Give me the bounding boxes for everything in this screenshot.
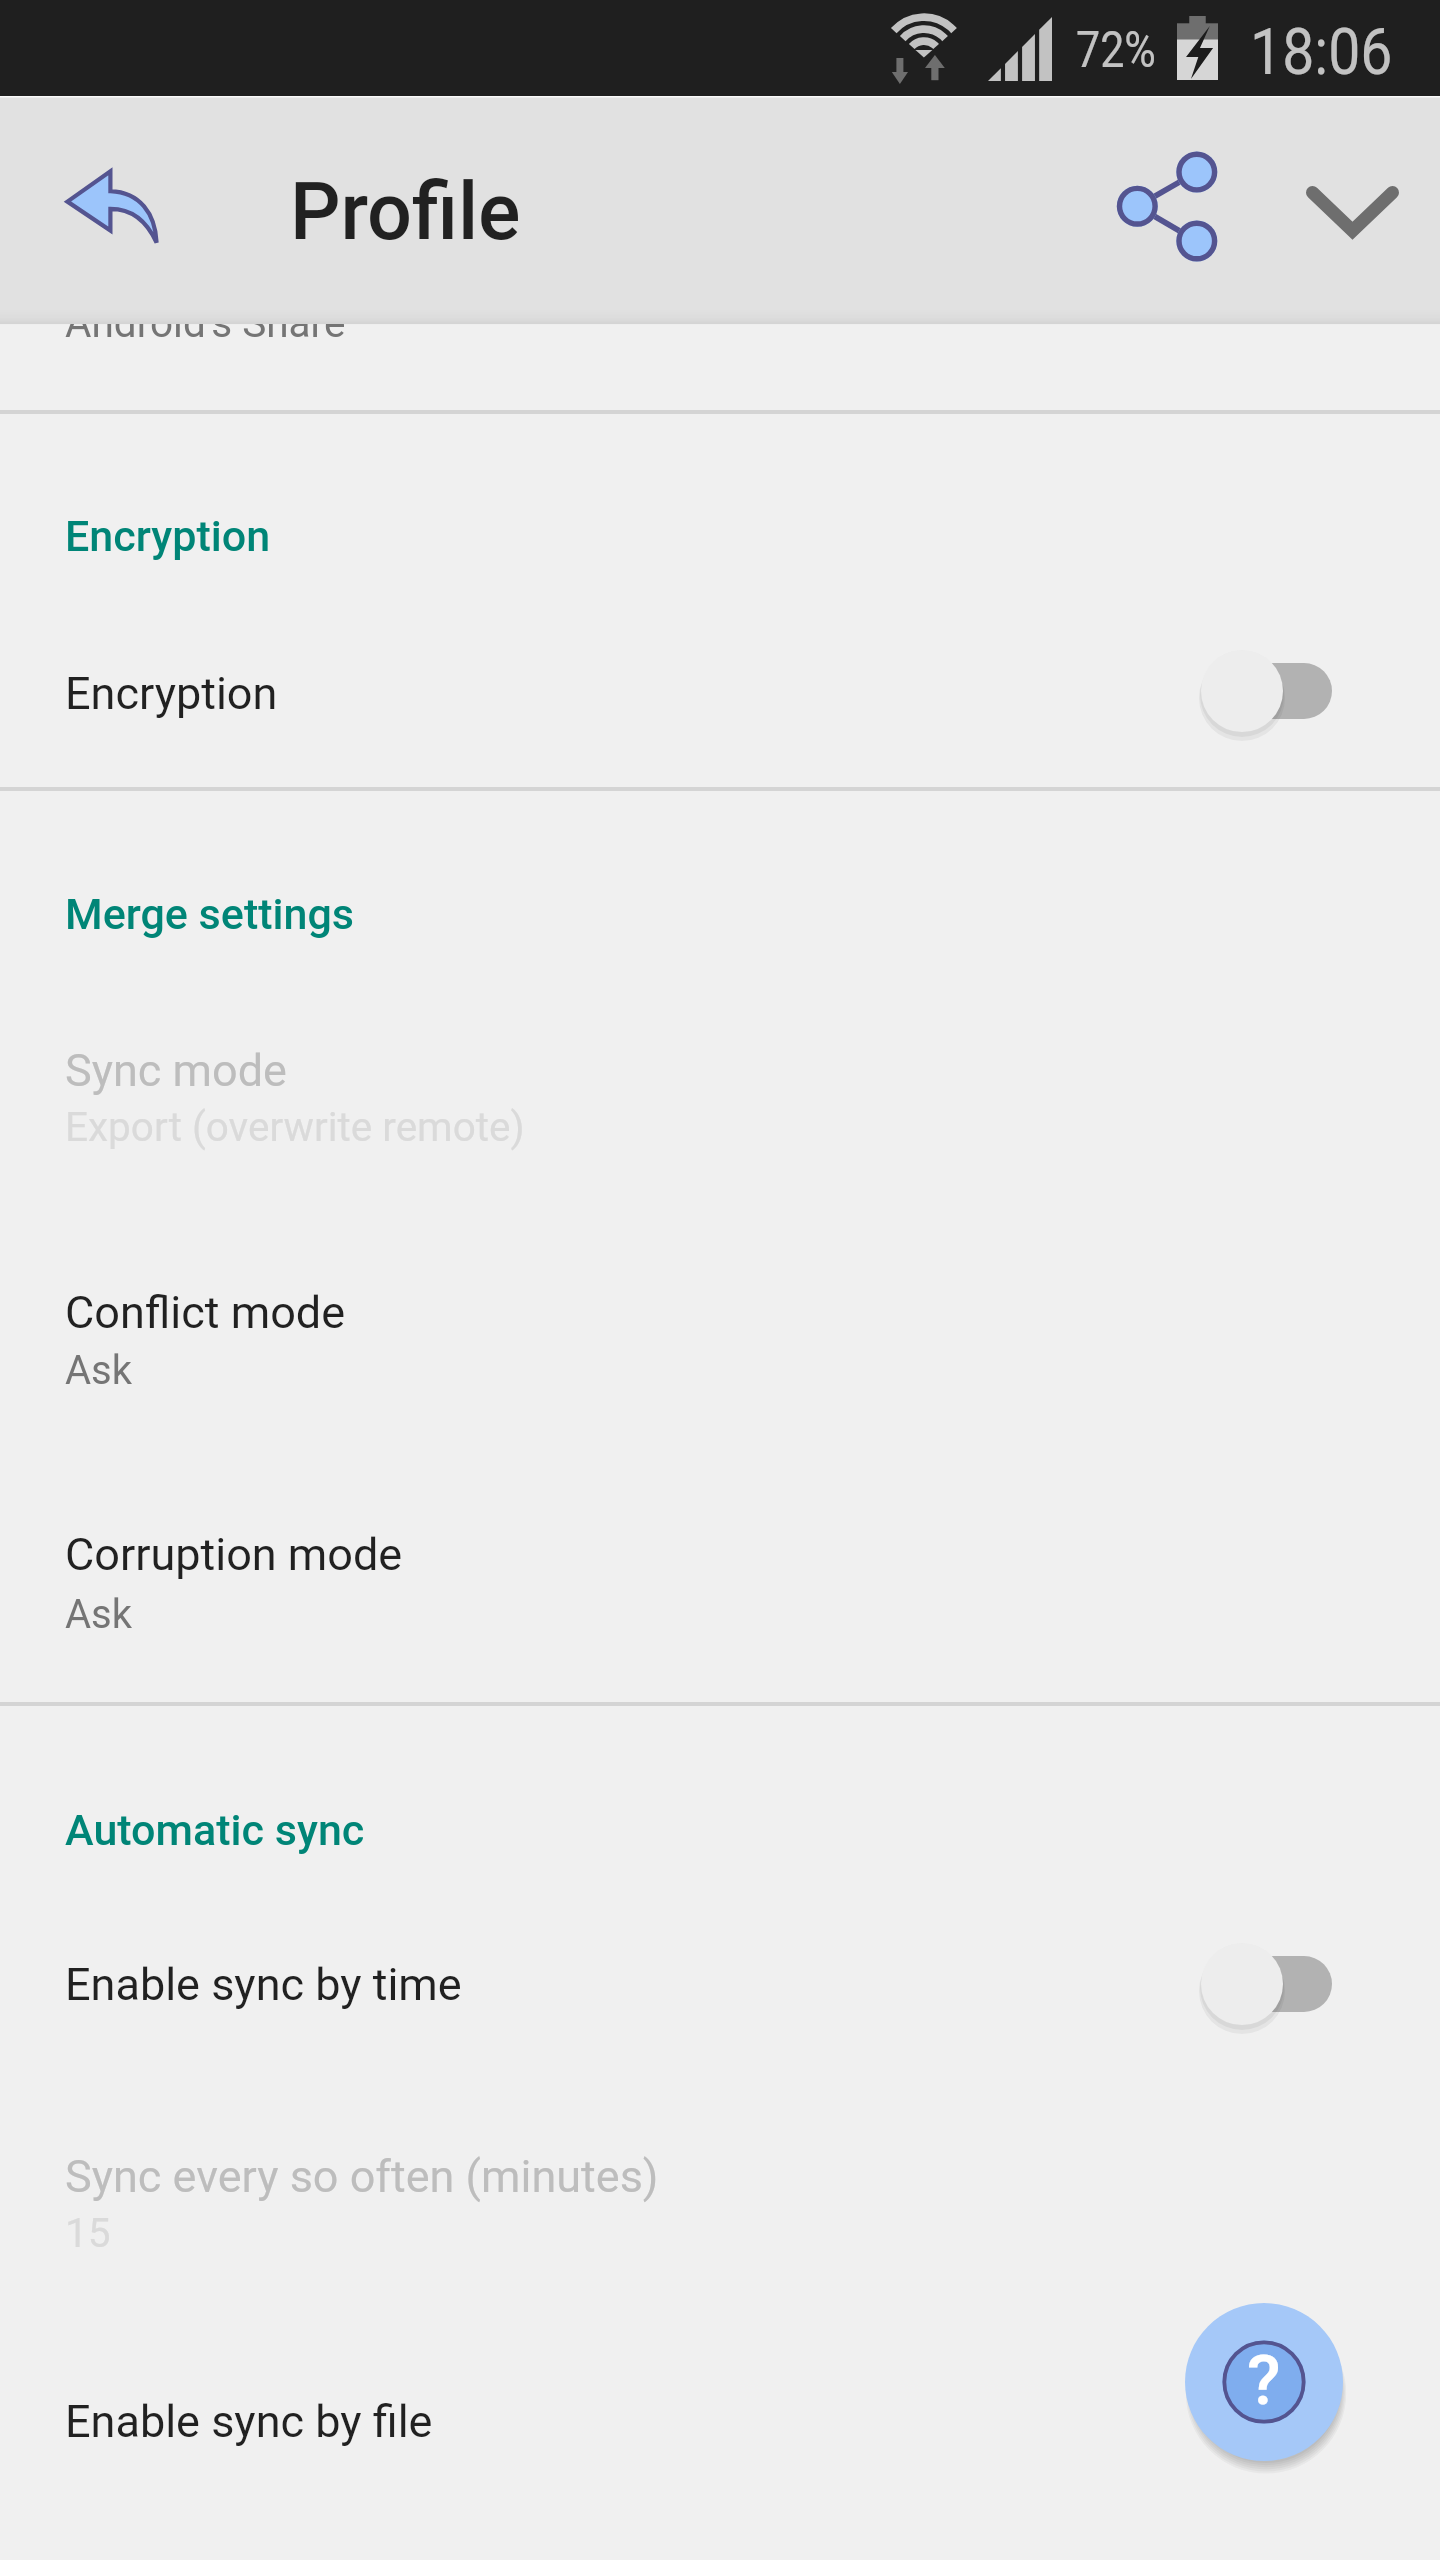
staticText: 15 <box>65 2209 111 2256</box>
button[interactable]: Back <box>34 137 190 277</box>
button[interactable]: Sync every so often (minutes) <box>0 2105 1440 2285</box>
staticText: Encryption <box>65 667 278 720</box>
staticText: Enable sync by time <box>65 1958 462 2011</box>
staticText: Export (overwrite remote) <box>65 1103 525 1150</box>
staticText: Enable sync by file <box>65 2395 433 2448</box>
button[interactable]: Enable sync by file <box>0 2350 1440 2520</box>
button[interactable]: Conflict mode <box>0 1240 1440 1420</box>
button[interactable]: Enable sync by time <box>0 1920 1440 2080</box>
staticText: Merge settings <box>65 889 355 939</box>
staticText: Ask <box>65 1347 133 1394</box>
button[interactable]: Encryption <box>0 600 1440 780</box>
button[interactable]: Share <box>1097 134 1237 279</box>
button[interactable]: Help <box>1185 2303 1343 2461</box>
staticText: Corruption mode <box>65 1528 403 1581</box>
button[interactable]: Corruption mode <box>0 1482 1440 1662</box>
button[interactable]: Toggle <box>1180 1930 1340 2038</box>
staticText: Sync every so often (minutes) <box>65 2150 659 2203</box>
staticText: Encryption <box>65 511 271 561</box>
staticText: Automatic sync <box>65 1805 365 1855</box>
staticText: 18:06 <box>1250 14 1393 90</box>
button[interactable]: Expand <box>1282 139 1422 284</box>
staticText: Android's Share <box>65 299 346 346</box>
staticText: Conflict mode <box>65 1286 346 1339</box>
staticText: Ask <box>65 1591 133 1638</box>
staticText: ? <box>1247 2340 1281 2421</box>
button[interactable]: Sync mode <box>0 1000 1440 1180</box>
staticText: Sync mode <box>65 1044 287 1097</box>
staticText: Profile <box>290 166 521 259</box>
button[interactable]: Toggle <box>1180 637 1340 745</box>
staticText: 72% <box>1076 21 1156 80</box>
